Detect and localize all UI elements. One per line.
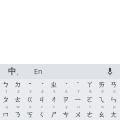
staticText: ㄘ [62, 110, 70, 119]
staticText: 5 [53, 89, 56, 94]
staticText: u [77, 104, 80, 109]
button[interactable]: ㄐ [36, 94, 48, 109]
button[interactable]: ˙ [72, 79, 84, 94]
staticText: ㄑ [38, 110, 46, 119]
button[interactable]: ㄛ [84, 94, 96, 109]
staticText: ㄔ [50, 95, 58, 104]
staticText: ㄕ [50, 110, 58, 119]
staticText: ˊ [65, 80, 68, 90]
staticText: ㄠ [98, 110, 106, 119]
button[interactable]: ㄞ [96, 79, 108, 94]
staticText: 4 [41, 89, 44, 94]
button[interactable]: Voice input [100, 64, 120, 79]
staticText: t [53, 104, 55, 109]
staticText: ㄅ [2, 80, 10, 89]
staticText: w [16, 104, 20, 109]
staticText: ㄓ [50, 80, 58, 89]
button[interactable]: ㄉ [12, 79, 24, 94]
button[interactable]: ㄢ [108, 79, 120, 94]
button[interactable]: ㄚ [84, 79, 96, 94]
button[interactable]: ㄠ [96, 109, 108, 120]
staticText: ㄇ [2, 110, 10, 119]
staticText: ㄜ [86, 110, 94, 119]
button[interactable]: ˋ [36, 79, 48, 94]
staticText: ㄋ [14, 110, 22, 119]
staticText: ㄍ [26, 95, 34, 104]
staticText: ㄨ [74, 110, 82, 119]
button[interactable]: ㄓ [48, 79, 60, 94]
button[interactable]: ㄕ [48, 109, 60, 120]
staticText: ˇ [28, 80, 32, 90]
staticText: e [29, 104, 32, 109]
staticText: ㄉ [14, 80, 22, 89]
staticText: r [41, 104, 43, 109]
staticText: ㄚ [86, 80, 94, 89]
button[interactable]: ㄆ [0, 94, 12, 109]
staticText: ˙ [77, 80, 79, 90]
staticText: ㄎ [26, 110, 34, 119]
staticText: ㄤ [110, 110, 118, 119]
staticText: y [65, 104, 68, 109]
button[interactable]: ˊ [60, 79, 72, 94]
button[interactable]: ㄜ [84, 109, 96, 120]
staticText: o [101, 104, 104, 109]
staticText: 1 [5, 89, 8, 94]
button[interactable]: ㄧ [72, 94, 84, 109]
button[interactable]: ㄎ [24, 109, 36, 120]
button[interactable]: ㄊ [12, 94, 24, 109]
staticText: 6 [65, 89, 68, 94]
staticText: q [5, 104, 8, 109]
staticText: 3 [29, 89, 32, 94]
button[interactable]: 中 [0, 64, 26, 79]
button[interactable]: ㄍ [24, 94, 36, 109]
button[interactable]: ㄤ [108, 109, 120, 120]
button[interactable]: ㄘ [60, 109, 72, 120]
button[interactable]: ㄋ [12, 109, 24, 120]
staticText: 2 [17, 89, 20, 94]
button[interactable]: ㄅ [0, 79, 12, 94]
staticText: i [89, 104, 91, 109]
staticText: ㄗ [62, 95, 70, 104]
staticText: 中 [8, 66, 17, 77]
staticText: ㄢ [110, 80, 118, 89]
button[interactable]: ㄑ [36, 109, 48, 120]
button[interactable]: En [26, 64, 50, 79]
staticText: ㄐ [38, 95, 46, 104]
button[interactable]: ㄔ [48, 94, 60, 109]
button[interactable]: ㄇ [0, 109, 12, 120]
staticText: ㄊ [14, 95, 22, 104]
button[interactable]: ㄣ [108, 94, 120, 109]
staticText: ㄟ [98, 95, 106, 104]
button[interactable]: ㄗ [60, 94, 72, 109]
staticText: ㄆ [2, 95, 10, 104]
staticText: ㄞ [98, 80, 106, 89]
staticText: 0 [113, 89, 116, 94]
staticText: ㄛ [86, 95, 94, 104]
staticText: , [17, 69, 19, 77]
staticText: En [34, 67, 43, 77]
staticText: 9 [101, 89, 104, 94]
button[interactable]: ˇ [24, 79, 36, 94]
staticText: p [113, 104, 116, 109]
staticText: 7 [77, 89, 80, 94]
staticText: ㄧ [74, 95, 82, 104]
button[interactable]: ㄨ [72, 109, 84, 120]
staticText: ㄣ [110, 95, 118, 104]
button[interactable]: ㄟ [96, 94, 108, 109]
staticText: 8 [89, 89, 92, 94]
staticText: ˋ [41, 80, 44, 90]
